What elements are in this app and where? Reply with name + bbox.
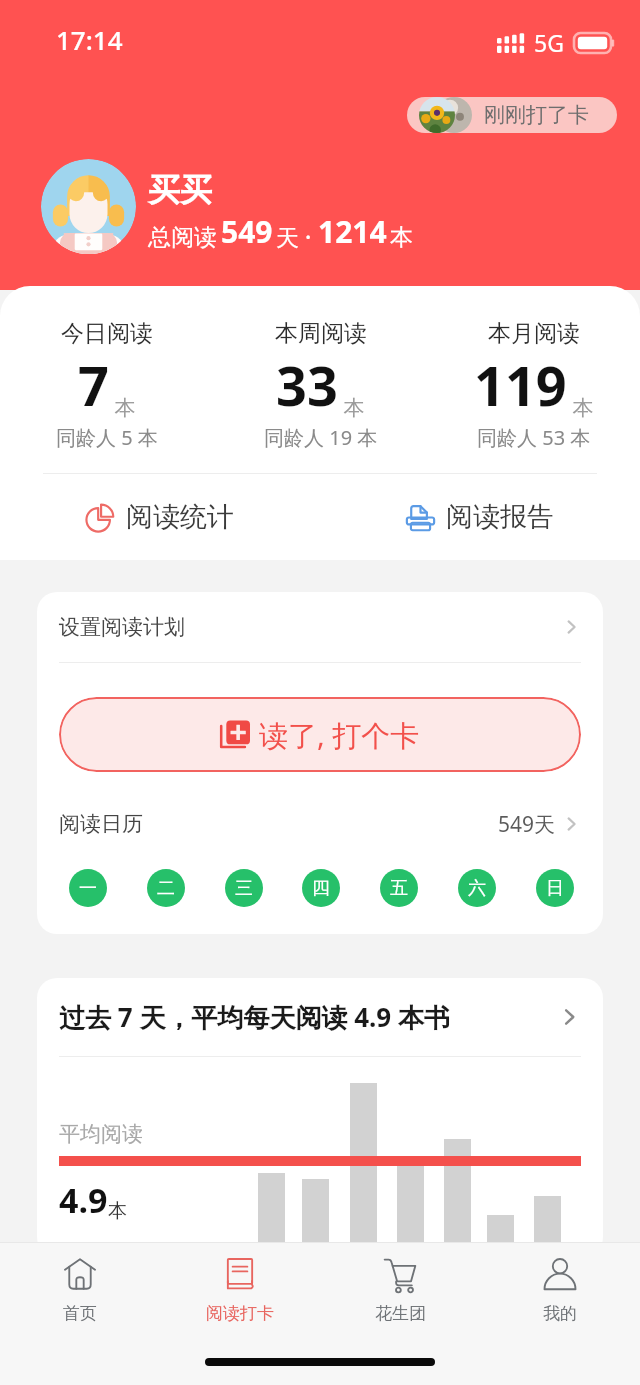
staticText: 刚刚打了卡 (484, 102, 589, 128)
staticText: 同龄人 19 本 (264, 424, 378, 451)
button[interactable]: 三 (225, 869, 263, 907)
staticText: 日 (546, 877, 564, 900)
staticText: 本周阅读 (275, 319, 367, 348)
staticText: 设置阅读计划 (59, 614, 185, 640)
button[interactable]: 四 (302, 869, 340, 907)
staticText: 五 (390, 877, 408, 900)
staticText: 119 (474, 348, 567, 422)
staticText: 33 (276, 348, 338, 422)
button[interactable]: Home (0, 1243, 160, 1339)
button[interactable]: Profile (480, 1243, 640, 1339)
staticText: 首页 (63, 1303, 97, 1324)
staticText: 我的 (543, 1303, 577, 1324)
button[interactable]: 阅读报告 (320, 474, 640, 560)
staticText: 买买 (148, 170, 212, 210)
staticText: 本月阅读 (488, 319, 580, 348)
staticText: 阅读报告 (446, 500, 554, 534)
button[interactable]: 阅读日历 (59, 797, 581, 851)
button[interactable]: 二 (147, 869, 185, 907)
staticText: 17:14 (56, 22, 123, 57)
button[interactable]: 读了, 打个卡 (59, 697, 581, 772)
staticText: 本 (390, 223, 413, 252)
staticText: 4.9 (59, 1177, 108, 1223)
staticText: 549 (221, 211, 273, 252)
staticText: 花生团 (375, 1303, 426, 1324)
staticText: 六 (468, 877, 486, 900)
staticText: 一 (79, 877, 97, 900)
staticText: 7 (78, 348, 109, 422)
staticText: 三 (235, 877, 253, 900)
staticText: 本 (338, 393, 365, 422)
staticText: 本 (108, 1199, 127, 1223)
staticText: 总阅读 (148, 223, 217, 252)
staticText: 阅读统计 (126, 500, 234, 534)
button[interactable]: Group buy (320, 1243, 480, 1339)
button[interactable]: 阅读统计 (0, 474, 320, 560)
staticText: 阅读日历 (59, 811, 143, 837)
staticText: 天 · (276, 221, 318, 252)
staticText: 今日阅读 (61, 319, 153, 348)
button[interactable]: 五 (380, 869, 418, 907)
button[interactable]: 六 (458, 869, 496, 907)
button[interactable]: 过去 7 天，平均每天阅读 4.9 本书 (59, 978, 581, 1056)
staticText: 同龄人 5 本 (56, 424, 158, 451)
staticText: 读了, 打个卡 (259, 715, 420, 755)
button[interactable]: 设置阅读计划 (59, 592, 581, 662)
staticText: 四 (312, 877, 330, 900)
staticText: 本 (109, 393, 136, 422)
staticText: 阅读打卡 (206, 1303, 274, 1324)
staticText: 本 (567, 393, 594, 422)
staticText: 549天 (498, 810, 556, 839)
button[interactable]: 日 (536, 869, 574, 907)
staticText: 过去 7 天，平均每天阅读 4.9 本书 (59, 999, 450, 1035)
button[interactable]: Reading check-in (160, 1243, 320, 1339)
button[interactable]: 刚刚打了卡 (407, 97, 617, 133)
button[interactable]: 一 (69, 869, 107, 907)
staticText: 同龄人 53 本 (477, 424, 591, 451)
staticText: 1214 (318, 211, 387, 252)
staticText: 平均阅读 (59, 1121, 143, 1147)
staticText: 二 (157, 877, 175, 900)
staticText: 5G (534, 27, 564, 58)
